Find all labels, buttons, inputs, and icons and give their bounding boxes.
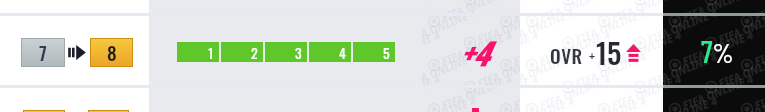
staticText: FIFA ONLINE 4 (752, 70, 765, 112)
staticText: FIFA ONLINE 4 (511, 70, 520, 112)
button[interactable]: 4 (309, 42, 351, 62)
staticText: FIFA ONLINE 4 (663, 0, 720, 3)
staticText: FIFA ONLINE 4 (439, 70, 515, 112)
staticText: FIFA ONLINE 4 (716, 48, 765, 91)
staticText: 1 (208, 42, 214, 62)
staticText: FIFA ONLINE 4 (680, 0, 756, 25)
staticText: FIFA ONLINE 4 (520, 4, 577, 47)
staticText: FIFA ONLINE 4 (663, 4, 720, 47)
staticText: +4 (459, 30, 489, 74)
staticText: 7% (701, 33, 734, 69)
staticText: FIFA ONLINE 4 (680, 26, 756, 69)
staticText: FIFA ONLINE 4 (716, 92, 765, 112)
staticText: FIFA ONLINE 4 (422, 0, 443, 25)
button[interactable] (23, 110, 65, 112)
staticText: FIFA ONLINE 4 (573, 0, 649, 3)
staticText: 5 (383, 42, 390, 62)
staticText: 8 (107, 38, 117, 66)
staticText: FIFA ONLINE 4 (752, 0, 765, 25)
staticText: FIFA ONLINE 4 (520, 48, 577, 91)
staticText: FIFA ONLINE 4 (537, 70, 613, 112)
button[interactable]: +4 (422, 0, 520, 112)
staticText: FIFA ONLINE 4 (439, 26, 515, 69)
staticText: FIFA ONLINE 4 (537, 0, 613, 25)
staticText: FIFA ONLINE 4 (645, 0, 663, 3)
button[interactable]: 7% (663, 0, 765, 112)
staticText: FIFA ONLINE 4 (520, 92, 577, 112)
staticText: FIFA ONLINE 4 (573, 4, 649, 47)
staticText: 4 (339, 42, 346, 62)
staticText: FIFA ONLINE 4 (475, 4, 520, 47)
staticText: FIFA ONLINE 4 (520, 70, 541, 112)
staticText: FIFA ONLINE 4 (663, 92, 720, 112)
staticText: FIFA ONLINE 4 (475, 92, 520, 112)
staticText: + (589, 45, 596, 66)
staticText: FIFA ONLINE 4 (716, 4, 765, 47)
staticText: OVR (550, 41, 583, 69)
staticText: FIFA ONLINE 4 (511, 0, 520, 25)
button[interactable]: Upgrade (67, 44, 87, 61)
button[interactable]: 1 (177, 42, 219, 62)
staticText: FIFA ONLINE 4 (716, 0, 765, 3)
staticText: 7 (39, 38, 47, 66)
staticText: FIFA ONLINE 4 (609, 26, 663, 69)
staticText: FIFA ONLINE 4 (663, 0, 684, 25)
staticText: FIFA ONLINE 4 (422, 4, 479, 47)
staticText: FIFA ONLINE 4 (645, 4, 663, 47)
staticText: FIFA ONLINE 4 (609, 70, 663, 112)
staticText: FIFA ONLINE 4 (663, 70, 684, 112)
staticText: FIFA ONLINE 4 (422, 70, 443, 112)
staticText: FIFA ONLINE 4 (439, 0, 515, 25)
staticText: FIFA ONLINE 4 (422, 48, 479, 91)
staticText: FIFA ONLINE 4 (511, 26, 520, 69)
staticText: FIFA ONLINE 4 (752, 26, 765, 69)
button[interactable]: 5 (353, 42, 395, 62)
staticText: FIFA ONLINE 4 (645, 48, 663, 91)
staticText: FIFA ONLINE 4 (680, 70, 756, 112)
staticText: FIFA ONLINE 4 (422, 92, 479, 112)
button[interactable]: 3 (265, 42, 307, 62)
staticText: FIFA ONLINE 4 (609, 0, 663, 25)
staticText: FIFA ONLINE 4 (520, 0, 541, 25)
staticText: 3 (295, 42, 302, 62)
button[interactable]: OVR (520, 0, 663, 112)
button[interactable]: 2 (221, 42, 263, 62)
staticText: FIFA ONLINE 4 (422, 26, 443, 69)
staticText: FIFA ONLINE 4 (475, 48, 520, 91)
staticText: FIFA ONLINE 4 (520, 26, 541, 69)
button[interactable] (88, 110, 129, 112)
staticText: 2 (251, 42, 258, 62)
staticText: FIFA ONLINE 4 (573, 48, 649, 91)
staticText: FIFA ONLINE 4 (422, 0, 479, 3)
staticText: FIFA ONLINE 4 (520, 0, 577, 3)
staticText: FIFA ONLINE 4 (663, 26, 684, 69)
staticText: FIFA ONLINE 4 (537, 26, 613, 69)
staticText: FIFA ONLINE 4 (663, 48, 720, 91)
button[interactable]: 7 (21, 38, 65, 67)
button[interactable]: 8 (90, 38, 133, 67)
staticText: FIFA ONLINE 4 (475, 0, 520, 3)
staticText: FIFA ONLINE 4 (573, 92, 649, 112)
staticText: 15 (596, 30, 622, 73)
